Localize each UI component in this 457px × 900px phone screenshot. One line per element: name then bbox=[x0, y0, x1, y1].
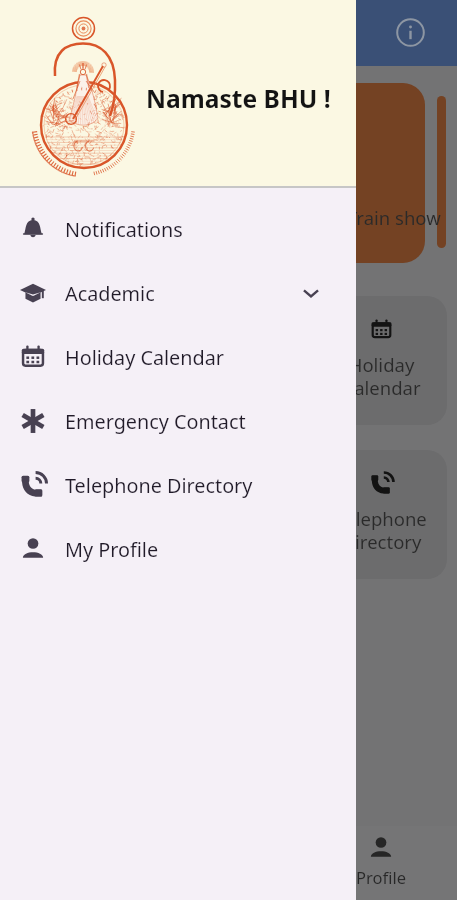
button[interactable]: Profile bbox=[336, 824, 426, 898]
staticText: Namaste BHU ! bbox=[146, 82, 331, 116]
staticText: Notifications bbox=[65, 216, 183, 243]
staticText: Telephone Directory bbox=[65, 472, 253, 499]
button[interactable]: Info bbox=[396, 18, 425, 47]
staticText: Profile bbox=[356, 866, 406, 888]
staticText: Academic bbox=[65, 280, 155, 307]
button[interactable]: Notifications bbox=[0, 197, 356, 261]
button[interactable]: Telephone Directory bbox=[0, 453, 356, 517]
staticText: Emergency Contact bbox=[65, 408, 246, 435]
staticText: Holiday Calendar bbox=[65, 344, 224, 371]
staticText: Telephone Directory bbox=[336, 506, 427, 554]
staticText: My Profile bbox=[65, 536, 159, 563]
button[interactable]: Telephone Directory bbox=[315, 450, 447, 579]
button[interactable]: Holiday Calendar bbox=[0, 325, 356, 389]
button[interactable] bbox=[105, 83, 425, 263]
staticText: Holiday Calendar bbox=[342, 352, 421, 400]
button[interactable]: Academic bbox=[0, 261, 356, 325]
button[interactable]: Holiday Calendar bbox=[315, 296, 447, 425]
button[interactable]: Emergency Contact bbox=[0, 389, 356, 453]
staticText: Train show bbox=[347, 205, 441, 230]
button[interactable]: My Profile bbox=[0, 517, 356, 581]
